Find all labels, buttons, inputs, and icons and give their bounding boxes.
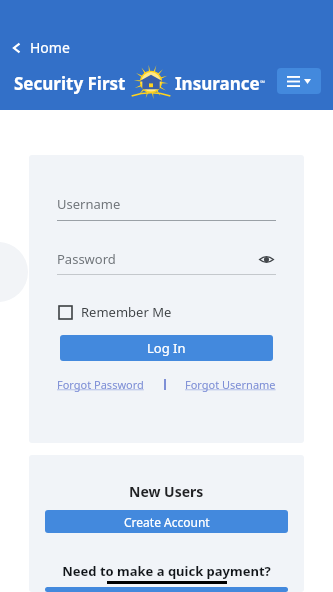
staticText: Username (57, 195, 121, 213)
staticText: New Users (129, 482, 204, 501)
button[interactable] (45, 587, 288, 592)
staticText: Forgot Password (57, 377, 144, 392)
staticText: Log In (147, 339, 186, 357)
button[interactable]: Home (6, 36, 74, 59)
button[interactable]: Log In (60, 335, 273, 361)
staticText: Home (30, 38, 70, 57)
button[interactable]: Create Account (45, 510, 288, 533)
staticText: Remember Me (81, 303, 172, 321)
staticText: ℠ (260, 79, 265, 87)
button[interactable]: Remember Me (57, 301, 174, 323)
button[interactable]: Menu (277, 68, 321, 94)
button[interactable]: Show password (256, 249, 276, 269)
staticText: Need to make a quick payment? (62, 562, 271, 580)
staticText: Password (57, 250, 256, 268)
staticText: Insurance (175, 72, 260, 95)
button[interactable]: Forgot Username (185, 377, 276, 392)
button[interactable]: Forgot Password (57, 377, 144, 392)
staticText: Security First (14, 72, 126, 95)
staticText: Forgot Username (185, 377, 276, 392)
staticText: Create Account (124, 514, 210, 530)
